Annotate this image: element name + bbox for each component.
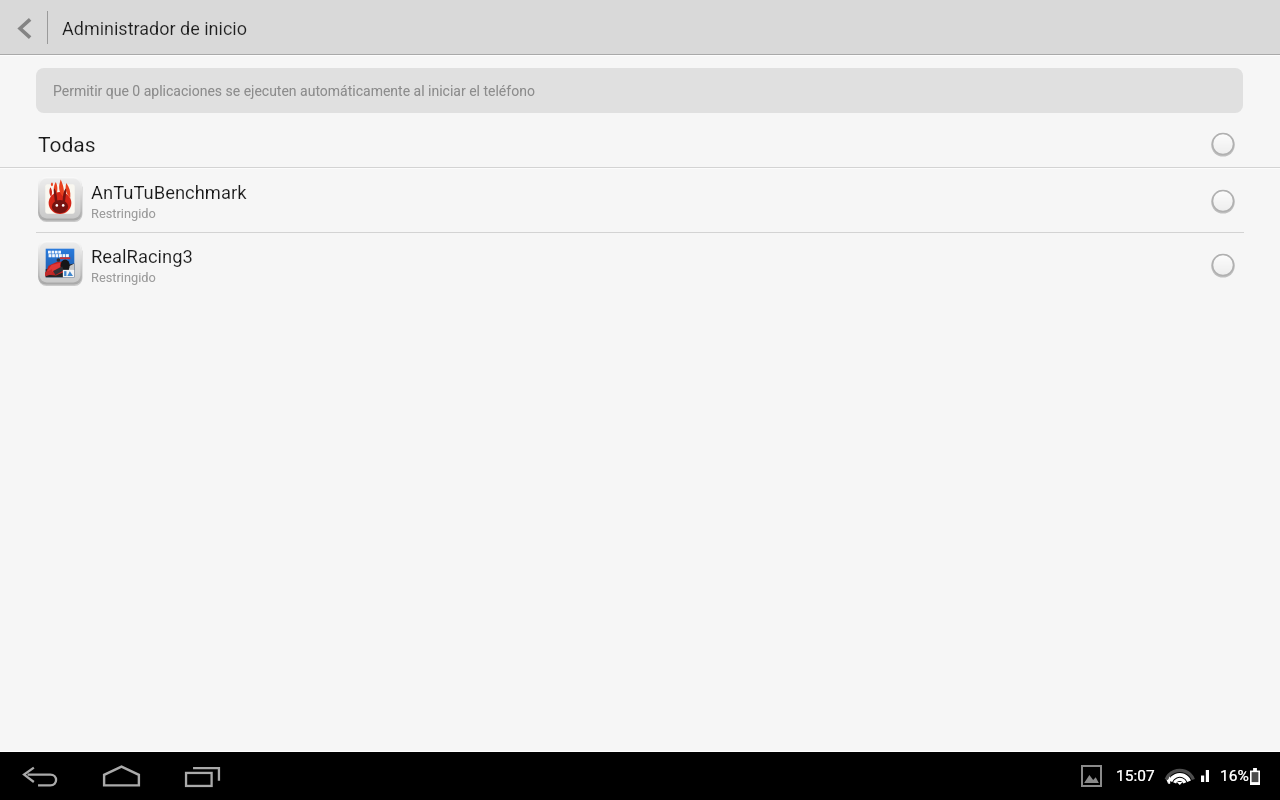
staticText: Permitir que 0 aplicaciones se ejecuten … [53,83,535,99]
staticText: 16% [1220,767,1249,785]
staticText: Restringido [91,206,156,221]
button[interactable]: Permitir que 0 aplicaciones se ejecuten … [36,68,1243,113]
button[interactable]: Back [0,752,80,800]
staticText: RealRacing3 [91,246,193,268]
staticText: 15:07 [1116,767,1155,785]
button[interactable]: Todas [0,113,1280,167]
button[interactable]: AnTuTuBenchmark [0,169,1280,232]
button[interactable]: Screenshot [1079,756,1103,796]
staticText: Todas [38,133,96,158]
button[interactable]: Recent apps [162,752,242,800]
staticText: Administrador de inicio [62,18,247,39]
button[interactable]: RealRacing3 [0,233,1280,296]
button[interactable]: Home [80,752,162,800]
staticText: AnTuTuBenchmark [91,182,247,204]
button[interactable]: Navigate up [0,0,47,54]
staticText: Restringido [91,270,156,285]
